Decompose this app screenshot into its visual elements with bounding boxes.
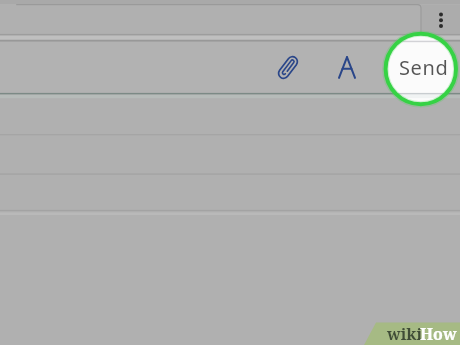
button[interactable]: More options [431,5,451,36]
button[interactable]: Formatting options [331,50,363,84]
staticText: Send [399,54,449,81]
staticText: wiki [387,323,423,345]
staticText: How [420,323,457,345]
button[interactable]: Attach file [272,50,304,84]
button[interactable]: Send [393,45,455,89]
